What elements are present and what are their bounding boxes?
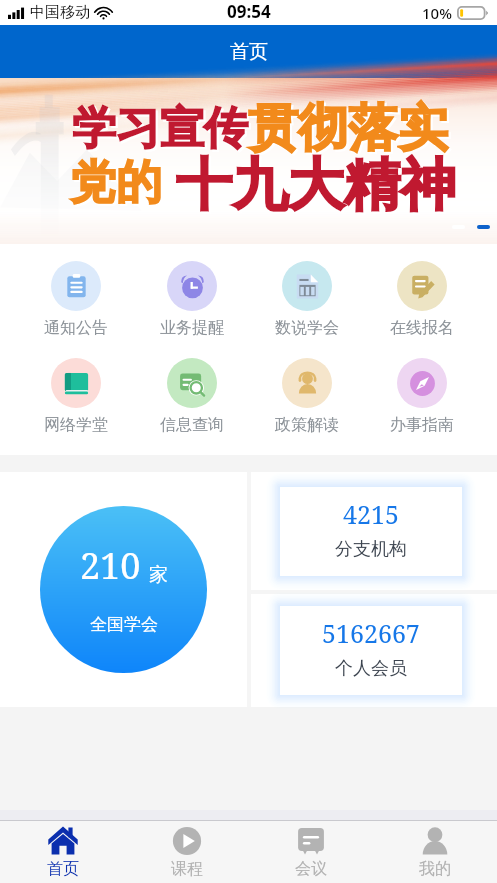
button[interactable]: 政策解读 <box>249 358 364 435</box>
staticText: 政策解读 <box>275 415 339 435</box>
button[interactable]: 210 <box>0 472 247 707</box>
staticText: 办事指南 <box>390 415 454 435</box>
staticText: 中国移动 <box>30 3 90 22</box>
staticText: 全国学会 <box>90 614 158 635</box>
button[interactable]: 网络学堂 <box>18 358 134 435</box>
button[interactable]: 首页 <box>0 821 125 883</box>
staticText: 党的 <box>72 156 164 214</box>
button[interactable]: 会议 <box>249 821 373 883</box>
staticText: 210 <box>80 541 141 590</box>
button[interactable]: 课程 <box>125 821 249 883</box>
staticText: 10% <box>422 3 452 23</box>
staticText: 5162667 <box>322 616 420 650</box>
staticText: 贯彻落实 <box>248 97 448 160</box>
button[interactable]: 5162667 <box>280 606 462 695</box>
staticText: 首页 <box>47 859 79 879</box>
button[interactable]: 信息查询 <box>134 358 249 435</box>
staticText: 学习宣传 <box>72 101 248 156</box>
button[interactable]: 业务提醒 <box>134 261 249 338</box>
staticText: 家 <box>149 563 168 587</box>
staticText: 我的 <box>419 859 451 879</box>
staticText: 学习宣传 <box>74 103 250 158</box>
staticText: 通知公告 <box>44 318 108 338</box>
staticText: 贯彻落实 <box>250 99 450 162</box>
staticText: 首页 <box>230 40 268 64</box>
button[interactable]: 在线报名 <box>364 261 479 338</box>
staticText: 在线报名 <box>390 318 454 338</box>
staticText: 4215 <box>343 497 399 531</box>
button[interactable]: 数说学会 <box>249 261 364 338</box>
staticText: 课程 <box>171 859 203 879</box>
button[interactable]: 4215 <box>280 487 462 576</box>
staticText: 数说学会 <box>275 318 339 338</box>
staticText: 十九大精神 <box>176 150 456 221</box>
staticText: 十九大精神 <box>178 152 458 223</box>
staticText: 业务提醒 <box>160 318 224 338</box>
button[interactable]: 通知公告 <box>18 261 134 338</box>
staticText: 分支机构 <box>335 538 407 561</box>
staticText: 信息查询 <box>160 415 224 435</box>
button[interactable]: 办事指南 <box>364 358 479 435</box>
staticText: 党的 <box>70 154 162 212</box>
staticText: 个人会员 <box>335 657 407 680</box>
button[interactable]: 我的 <box>373 821 497 883</box>
staticText: 09:54 <box>227 0 271 23</box>
staticText: 会议 <box>295 859 327 879</box>
staticText: 网络学堂 <box>44 415 108 435</box>
